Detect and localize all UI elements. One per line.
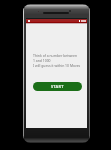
button[interactable]: START	[33, 82, 82, 91]
staticText: Think of a number between 1 and 1000 I w…	[33, 53, 81, 68]
staticText: START	[51, 84, 64, 89]
